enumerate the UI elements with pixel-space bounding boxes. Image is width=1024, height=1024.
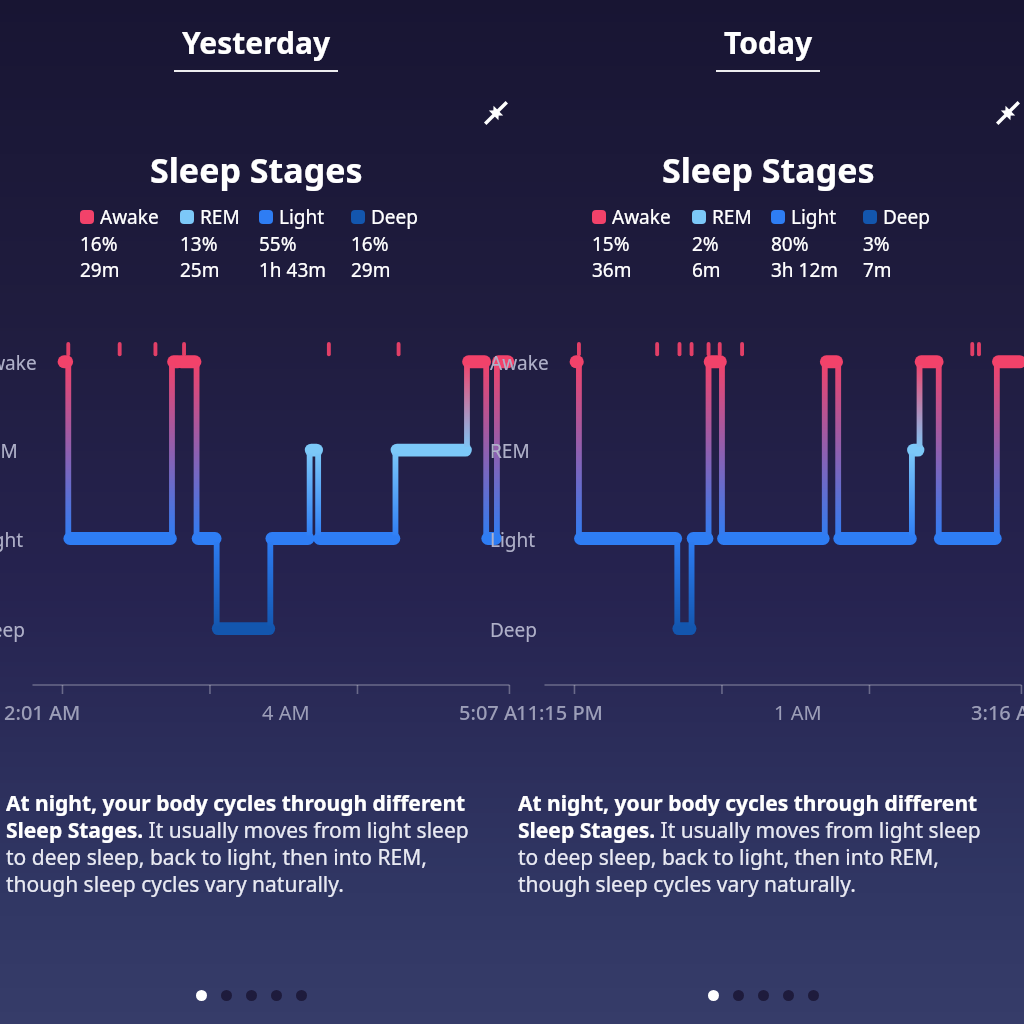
staticText: 29m [351,257,391,283]
button[interactable] [246,990,257,1001]
staticText: Light [791,204,837,230]
staticText: 13% [180,231,218,257]
button[interactable] [808,990,819,1001]
staticText: 3:16 A [971,699,1024,726]
staticText: Today [724,22,813,63]
staticText: 1h 43m [259,257,327,283]
staticText: REM [712,204,752,230]
staticText: 16% [80,231,118,257]
button[interactable] [271,990,282,1001]
staticText: 5:07 A [459,699,518,726]
staticText: Light [279,204,325,230]
button[interactable] [783,990,794,1001]
staticText: 29m [80,257,120,283]
staticText: 36m [592,257,632,283]
button[interactable]: Collapse [481,98,511,128]
staticText: Light [0,527,24,553]
staticText: Light [490,527,536,553]
staticText: 16% [351,231,389,257]
staticText: 1 AM [774,699,822,726]
button[interactable]: Yesterday [174,22,338,72]
button[interactable] [296,990,307,1001]
staticText: Deep [883,204,930,230]
staticText: Deep [0,617,25,643]
staticText: Yesterday [182,22,331,63]
staticText: 2% [692,231,719,257]
staticText: Awake [612,204,671,230]
staticText: 2:01 AM [4,699,81,726]
staticText: 55% [259,231,297,257]
staticText: At night, your body cycles through diffe… [518,789,1006,898]
staticText: Deep [490,617,537,643]
button[interactable] [758,990,769,1001]
button[interactable]: Today [716,22,820,72]
staticText: 3% [863,231,890,257]
staticText: Sleep Stages [662,147,875,193]
staticText: 25m [180,257,220,283]
staticText: At night, your body cycles through diffe… [6,789,494,898]
button[interactable]: Collapse [993,98,1023,128]
button[interactable] [221,990,232,1001]
button[interactable] [733,990,744,1001]
button[interactable] [708,990,719,1001]
staticText: REM [490,438,530,464]
staticText: 11:15 PM [516,699,603,726]
staticText: Awake [0,350,37,376]
staticText: 80% [771,231,809,257]
staticText: REM [200,204,240,230]
staticText: Deep [371,204,418,230]
staticText: 3h 12m [771,257,839,283]
staticText: Awake [100,204,159,230]
button[interactable] [196,990,207,1001]
staticText: 7m [863,257,892,283]
staticText: Awake [490,350,549,376]
staticText: Sleep Stages [150,147,363,193]
staticText: 4 AM [262,699,310,726]
staticText: 15% [592,231,630,257]
staticText: REM [0,438,18,464]
staticText: 6m [692,257,721,283]
